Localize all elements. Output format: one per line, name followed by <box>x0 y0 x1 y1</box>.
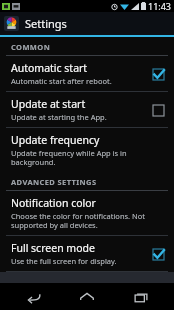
button[interactable]: Unchecked <box>150 102 166 118</box>
staticText: ADVANCED SETTINGS <box>11 177 97 187</box>
staticText: Full screen mode <box>11 241 95 255</box>
staticText: Use the full screen for display. <box>11 256 117 266</box>
button[interactable]: Recents <box>121 283 161 310</box>
button[interactable]: Full screen mode <box>0 236 174 271</box>
staticText: COMMON <box>11 42 51 52</box>
staticText: Update frequency while App is in backgro… <box>11 148 166 167</box>
button[interactable]: Checked <box>150 246 166 262</box>
button[interactable]: Back <box>14 283 54 310</box>
staticText: Automatic start after reboot. <box>11 76 112 86</box>
staticText: Update frequency <box>11 133 100 147</box>
staticText: Update at start <box>11 97 86 111</box>
staticText: Settings <box>25 16 67 31</box>
button[interactable]: Checked <box>150 66 166 82</box>
button[interactable]: Update at start <box>0 92 174 127</box>
staticText: Notification color <box>11 196 96 210</box>
button[interactable]: Update frequency <box>0 128 174 172</box>
other: App icon <box>4 16 19 31</box>
staticText: Automatic start <box>11 61 88 75</box>
staticText: 11:43 <box>148 0 172 12</box>
button[interactable]: App icon <box>0 12 174 35</box>
button[interactable]: Notification color <box>0 191 174 235</box>
staticText: Choose the color for notifications. Not … <box>11 211 166 230</box>
button[interactable]: Home <box>67 283 107 310</box>
staticText: Update at starting the App. <box>11 112 107 122</box>
button[interactable]: Automatic start <box>0 56 174 91</box>
